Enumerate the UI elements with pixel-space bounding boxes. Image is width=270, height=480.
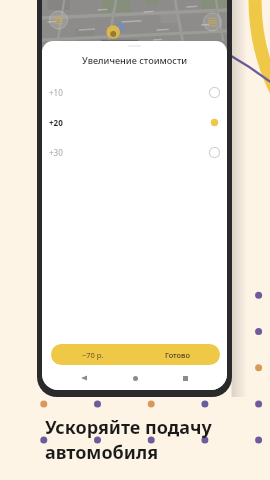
- staticText: +30: [49, 147, 63, 158]
- button[interactable]: Home: [126, 372, 144, 384]
- button[interactable]: Back: [75, 372, 93, 384]
- staticText: Готово: [165, 350, 190, 360]
- button[interactable]: +20: [42, 107, 227, 137]
- staticText: Ускоряйте подачу автомобиля: [45, 415, 212, 465]
- button[interactable]: ~70 р.: [51, 344, 220, 365]
- staticText: ~70 р.: [82, 350, 104, 360]
- button[interactable]: +30: [42, 137, 227, 167]
- staticText: +10: [49, 87, 63, 98]
- staticText: +20: [49, 117, 63, 128]
- button[interactable]: Recent apps: [176, 372, 194, 384]
- staticText: Увеличение стоимости: [82, 54, 188, 67]
- button[interactable]: +10: [42, 77, 227, 107]
